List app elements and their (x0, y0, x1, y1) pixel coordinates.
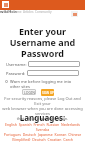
button[interactable]: Password: (27, 70, 79, 76)
staticText: Languages: (0, 112, 85, 123)
staticText: Username: (6, 62, 27, 67)
staticText: English Spanish French Russian Nederland… (2, 122, 83, 142)
staticText: Password: (6, 71, 26, 76)
staticText: LOGIN (24, 90, 35, 95)
staticText: Home Articles Community (13, 10, 52, 14)
button[interactable]: SIGN UP (41, 89, 54, 96)
button[interactable]: Logo (2, 1, 9, 8)
button[interactable]: wikiHow (0, 9, 18, 14)
button[interactable]: Warn me before logging me into other sit… (5, 80, 8, 83)
button[interactable]: LOGIN (22, 89, 36, 95)
staticText: Enter your Username and Password (0, 25, 85, 59)
button[interactable]: Image (71, 11, 78, 17)
button[interactable]: Username: (28, 61, 80, 67)
staticText: Warn me before logging me into other sit… (10, 79, 81, 89)
staticText: SIGN UP (42, 91, 54, 95)
staticText: For security reasons, please Log Out and… (2, 96, 83, 121)
